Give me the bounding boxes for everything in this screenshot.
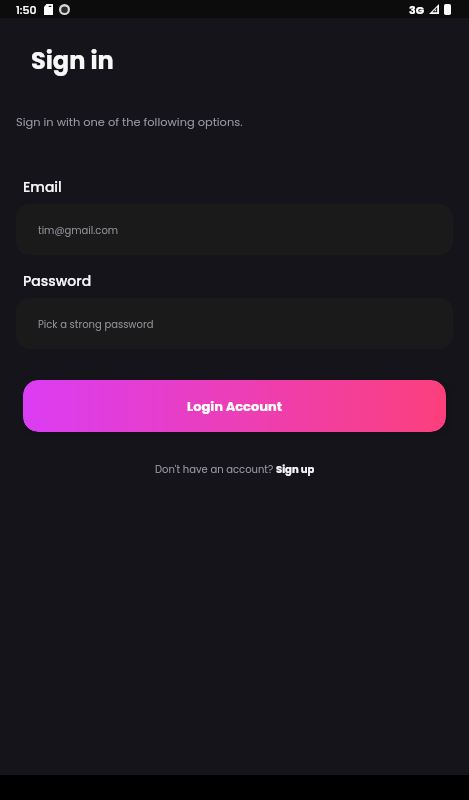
button[interactable]: tim@gmail.com (16, 204, 453, 255)
button[interactable]: Pick a strong password (16, 298, 453, 349)
button[interactable]: Sign up (276, 462, 315, 476)
staticText: 1:50 (16, 2, 37, 17)
staticText: Email (23, 177, 62, 197)
staticText: Password (23, 271, 92, 291)
staticText: Don't have an account? (155, 462, 276, 476)
button[interactable]: Login Account (23, 380, 446, 432)
staticText: 3G (409, 2, 425, 17)
staticText: Sign in (31, 44, 114, 78)
staticText: tim@gmail.com (38, 223, 119, 237)
staticText: Login Account (187, 397, 283, 415)
staticText: Sign in with one of the following option… (16, 114, 243, 130)
staticText: Pick a strong password (38, 317, 154, 331)
